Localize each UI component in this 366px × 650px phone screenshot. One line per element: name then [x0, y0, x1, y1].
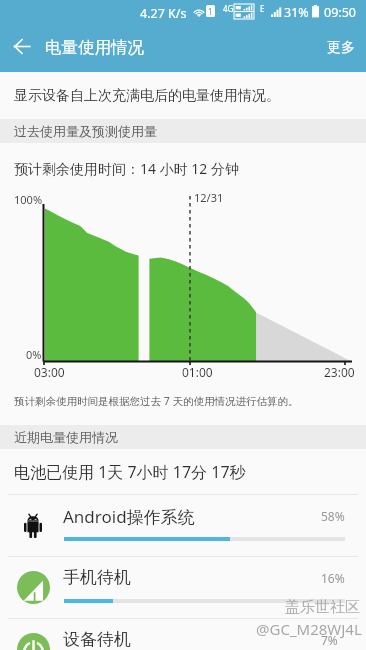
staticText: 1	[208, 6, 213, 17]
button[interactable]: 更多	[316, 25, 366, 71]
staticText: 23:00	[324, 364, 355, 380]
staticText: 31%	[284, 4, 309, 21]
staticText: 09:50	[324, 4, 356, 21]
staticText: 手机待机	[63, 567, 131, 588]
staticText: 01:00	[182, 364, 213, 380]
staticText: 近期电量使用情况	[14, 429, 118, 445]
staticText: 7%	[321, 632, 338, 648]
staticText: 12/31	[194, 190, 224, 205]
button[interactable]: 设备待机	[0, 619, 366, 650]
button[interactable]: Android操作系统	[0, 495, 366, 556]
staticText: E	[260, 3, 265, 14]
staticText: 100%	[14, 192, 43, 207]
staticText: 盖乐世社区	[285, 598, 360, 617]
staticText: Android操作系统	[63, 505, 195, 528]
staticText: 4.27 K/s	[140, 5, 187, 22]
staticText: 更多	[327, 39, 355, 57]
staticText: 设备待机	[63, 629, 131, 650]
staticText: @GC_M28WJ4L	[256, 619, 362, 639]
staticText: 过去使用量及预测使用量	[14, 123, 157, 139]
staticText: 58%	[321, 508, 345, 524]
staticText: 预计剩余使用时间是根据您过去 7 天的使用情况进行估算的。	[14, 394, 299, 408]
staticText: 显示设备自上次充满电后的电量使用情况。	[14, 87, 280, 105]
staticText: 电量使用情况	[45, 37, 144, 58]
staticText: 4G	[223, 3, 234, 14]
staticText: 电池已使用 1天 7小时 17分 17秒	[14, 461, 246, 483]
button[interactable]: 手机待机	[0, 557, 366, 618]
staticText: 预计剩余使用时间：14 小时 12 分钟	[14, 159, 239, 178]
staticText: 0%	[26, 347, 42, 362]
button[interactable]: Back	[0, 24, 44, 72]
staticText: 16%	[321, 570, 345, 586]
staticText: 03:00	[34, 364, 65, 380]
